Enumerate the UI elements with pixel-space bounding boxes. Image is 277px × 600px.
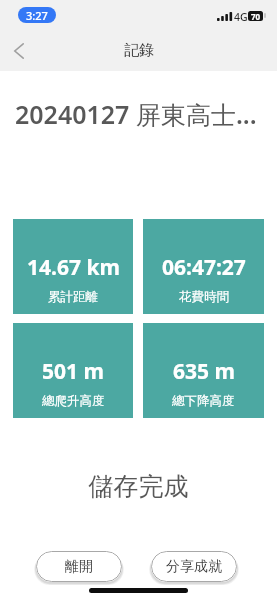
button[interactable]: 501 m: [13, 323, 133, 418]
button[interactable]: 分享成就: [151, 551, 237, 582]
staticText: 20240127 屏東高士...: [15, 97, 257, 131]
staticText: 離開: [65, 558, 93, 576]
staticText: 總下降高度: [172, 393, 235, 409]
button[interactable]: 06:47:27: [143, 219, 264, 314]
button[interactable]: 14.67 km: [13, 219, 133, 314]
staticText: 06:47:27: [162, 253, 246, 282]
staticText: 分享成就: [166, 558, 222, 576]
staticText: 記錄: [124, 41, 154, 60]
staticText: 花費時間: [179, 289, 229, 305]
staticText: 635 m: [173, 357, 235, 386]
staticText: 總爬升高度: [42, 393, 105, 409]
staticText: 70: [251, 11, 261, 21]
button[interactable]: 離開: [36, 551, 122, 582]
button[interactable]: Back: [0, 30, 40, 71]
staticText: 儲存完成: [0, 471, 277, 502]
staticText: 4G: [234, 10, 248, 24]
staticText: 累計距離: [48, 289, 98, 305]
staticText: 14.67 km: [27, 253, 120, 282]
staticText: 501 m: [42, 357, 104, 386]
staticText: 3:27: [26, 8, 48, 23]
button[interactable]: 635 m: [143, 323, 264, 418]
